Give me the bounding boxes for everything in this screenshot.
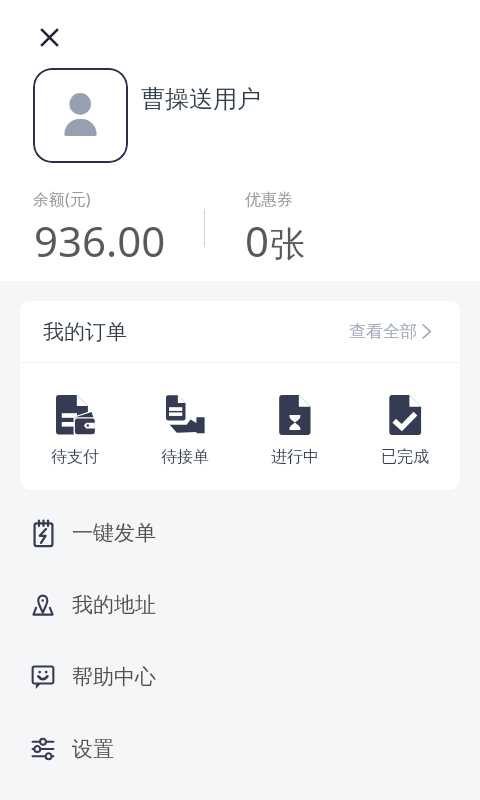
- staticText: 余额(元): [33, 188, 91, 210]
- button[interactable]: 进行中: [240, 363, 350, 467]
- button[interactable]: 设置: [0, 713, 480, 785]
- staticText: 我的地址: [72, 592, 156, 618]
- staticText: 我的订单: [43, 319, 127, 345]
- staticText: 优惠券: [245, 190, 293, 210]
- button[interactable]: Close: [29, 17, 69, 57]
- staticText: 待接单: [161, 447, 209, 467]
- staticText: 0: [245, 212, 270, 269]
- button[interactable]: 一键发单: [0, 497, 480, 569]
- staticText: 曹操送用户: [141, 84, 261, 114]
- button[interactable]: 我的订单: [20, 301, 460, 362]
- staticText: 待支付: [51, 447, 99, 467]
- staticText: 设置: [72, 736, 114, 762]
- staticText: 张: [270, 222, 305, 266]
- staticText: 已完成: [381, 447, 429, 467]
- staticText: 一键发单: [72, 520, 156, 546]
- button[interactable]: 待接单: [130, 363, 240, 467]
- button[interactable]: 帮助中心: [0, 641, 480, 713]
- button[interactable]: 余额(元): [33, 186, 193, 262]
- staticText: 936.00: [34, 212, 166, 269]
- button[interactable]: 已完成: [350, 363, 460, 467]
- button[interactable]: Avatar: [33, 68, 128, 163]
- button[interactable]: 待支付: [20, 363, 130, 467]
- staticText: 帮助中心: [72, 664, 156, 690]
- button[interactable]: 优惠券: [245, 186, 385, 262]
- staticText: 查看全部: [349, 321, 417, 342]
- button[interactable]: 我的地址: [0, 569, 480, 641]
- staticText: 进行中: [271, 447, 319, 467]
